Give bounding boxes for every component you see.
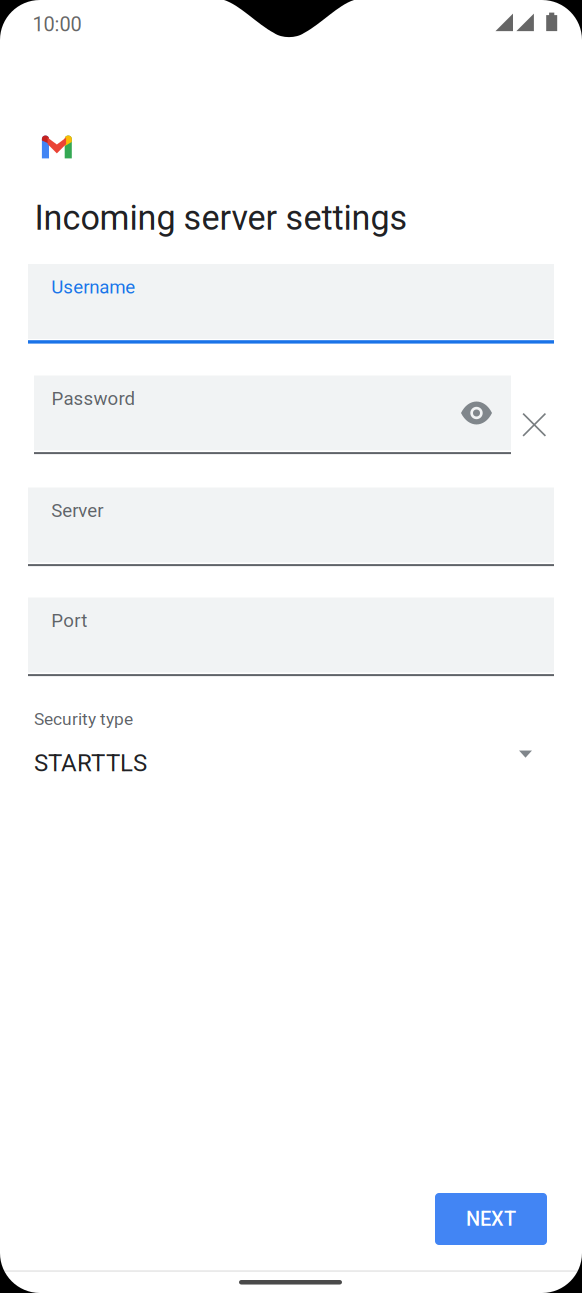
button[interactable]: Clear password	[522, 413, 546, 436]
staticText: 10:00	[33, 13, 82, 36]
staticText: Security type	[34, 709, 133, 729]
button[interactable]: Password	[34, 375, 511, 455]
staticText: Port	[51, 610, 87, 631]
button[interactable]: Username	[28, 264, 554, 344]
staticText: NEXT	[466, 1207, 516, 1231]
staticText: Password	[51, 388, 135, 409]
button[interactable]: NEXT	[435, 1193, 547, 1245]
staticText: STARTTLS	[34, 749, 147, 777]
button[interactable]: Security type	[28, 708, 554, 780]
staticText: Incoming server settings	[34, 198, 407, 238]
button[interactable]: Port	[28, 597, 554, 677]
staticText: Username	[51, 276, 135, 298]
staticText: Server	[51, 500, 103, 521]
button[interactable]: Server	[28, 487, 554, 567]
